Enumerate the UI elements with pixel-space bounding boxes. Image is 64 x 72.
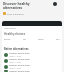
staticText: Energy — [4, 38, 11, 41]
staticText: Scan a product — [7, 12, 24, 15]
staticText: Sugar — [38, 38, 44, 41]
staticText: Nutri A - 82% — [9, 61, 22, 64]
staticText: Organic whole grain — [9, 58, 30, 61]
staticText: Nutri A - 82% — [9, 67, 22, 70]
staticText: Healthy choices — [4, 32, 26, 36]
staticText: Discover healthy — [3, 2, 30, 6]
staticText: Nutri-Score — [4, 27, 16, 30]
staticText: Better alternatives — [4, 47, 29, 51]
staticText: alternatives — [3, 6, 23, 10]
button[interactable]: Organic whole grain — [4, 70, 60, 72]
button[interactable]: Organic whole grain — [4, 58, 60, 64]
button[interactable]: Organic whole grain — [4, 52, 60, 58]
staticText: Salt — [56, 38, 60, 41]
staticText: Fat — [23, 38, 26, 41]
staticText: Nutri A - 82% — [9, 55, 22, 58]
button[interactable]: Organic whole grain — [4, 64, 60, 70]
button[interactable]: Scan a product — [3, 12, 24, 15]
staticText: Organic whole grain — [9, 64, 30, 67]
staticText: Organic whole grain — [9, 70, 30, 72]
button[interactable]: Profile — [53, 2, 57, 6]
staticText: Organic whole grain — [9, 52, 30, 55]
